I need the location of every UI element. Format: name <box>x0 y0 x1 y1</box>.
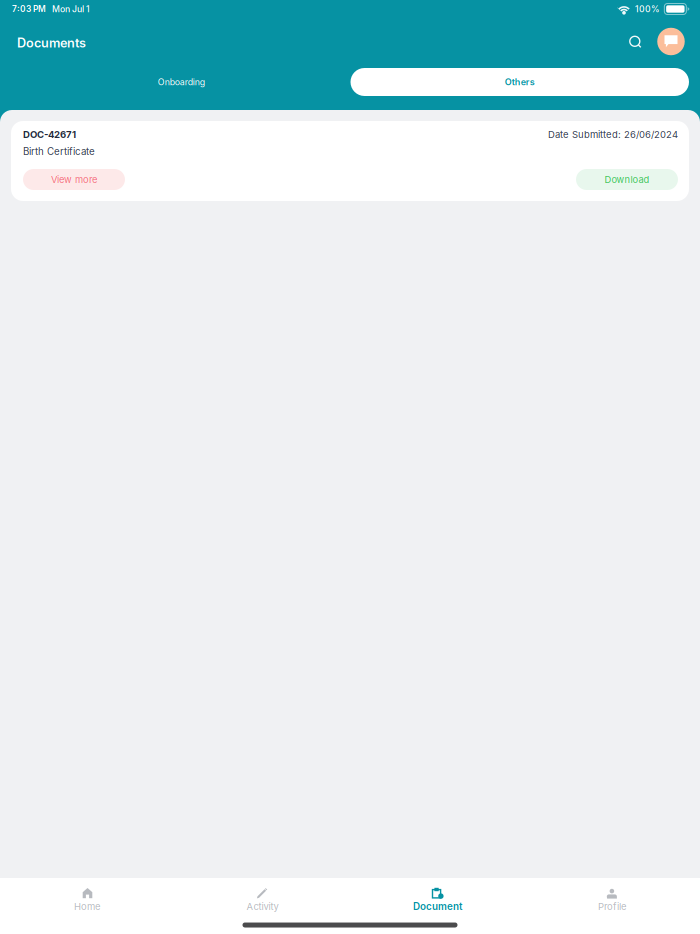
staticText: Home <box>74 901 101 912</box>
button[interactable]: Messages <box>651 24 691 61</box>
staticText: 100% <box>631 4 664 14</box>
staticText: DOC-42671 <box>23 129 76 140</box>
staticText: Documents <box>17 35 86 51</box>
staticText: Profile <box>598 901 627 912</box>
button[interactable]: View more <box>23 169 125 190</box>
button[interactable]: Search <box>620 24 651 61</box>
staticText: Others <box>505 76 535 87</box>
staticText: Onboarding <box>158 77 205 87</box>
button[interactable]: Document <box>350 878 525 916</box>
button[interactable]: Download <box>576 169 678 190</box>
button[interactable]: Profile <box>525 878 700 916</box>
staticText: View more <box>51 174 97 185</box>
staticText: Date Submitted: 26/06/2024 <box>548 129 678 140</box>
staticText: Birth Certificate <box>23 146 95 157</box>
staticText: Download <box>604 174 649 185</box>
button[interactable]: Activity <box>175 878 350 916</box>
staticText: Document <box>413 900 462 912</box>
button[interactable]: Home <box>0 878 175 916</box>
staticText: Activity <box>246 901 278 912</box>
button[interactable]: Others <box>350 68 689 96</box>
staticText: Mon Jul 1 <box>46 4 90 14</box>
staticText: 7:03 PM <box>12 4 46 14</box>
button[interactable]: Onboarding <box>12 68 350 96</box>
